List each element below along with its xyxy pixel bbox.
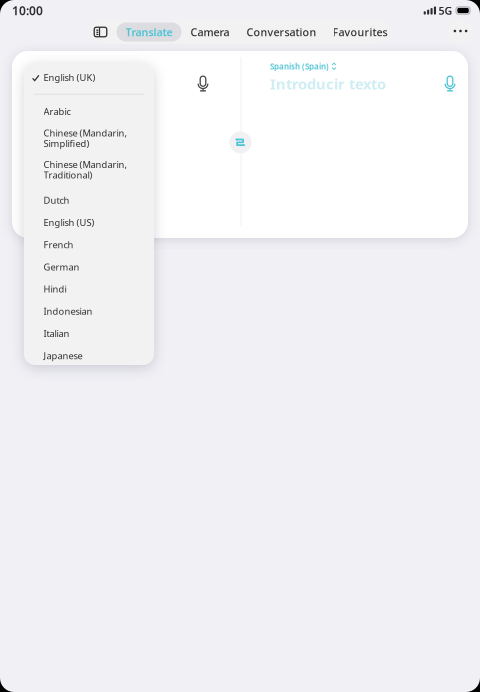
button[interactable]: Italian [24, 323, 154, 345]
staticText: 5G [438, 3, 452, 18]
button[interactable]: Camera [181, 20, 238, 44]
staticText: 10:00 [12, 2, 43, 18]
button[interactable]: Indonesian [24, 301, 154, 323]
staticText: Favourites [332, 25, 387, 39]
staticText: Traditional) [43, 169, 92, 181]
button[interactable]: Conversation [238, 20, 324, 44]
button[interactable]: Chinese (Mandarin, [24, 122, 154, 156]
staticText: English (UK) [43, 71, 95, 84]
button[interactable]: Speak source language [190, 71, 216, 97]
staticText: Japanese [43, 349, 82, 362]
staticText: Camera [190, 25, 229, 39]
button[interactable]: German [24, 256, 154, 279]
button[interactable]: French [24, 234, 154, 256]
button[interactable]: Dutch [24, 190, 154, 212]
staticText: Dutch [43, 194, 69, 206]
staticText: Conversation [246, 25, 316, 39]
staticText: Arabic [43, 105, 70, 118]
staticText: English (US) [43, 216, 94, 229]
button[interactable]: Arabic [24, 101, 154, 123]
staticText: Indonesian [43, 305, 92, 317]
staticText: French [43, 238, 73, 251]
button[interactable]: Japanese [24, 345, 154, 367]
button[interactable]: Translate [116, 22, 181, 41]
staticText: Translate [125, 25, 172, 39]
button[interactable]: Hindi [24, 279, 154, 301]
staticText: Chinese (Mandarin, [43, 158, 127, 171]
button[interactable]: English (UK) [24, 67, 154, 89]
staticText: Italian [43, 327, 69, 340]
staticText: Introducir texto [270, 74, 386, 94]
button[interactable]: English (US) [24, 212, 154, 234]
staticText: Chinese (Mandarin, [43, 127, 127, 139]
staticText: German [43, 261, 79, 273]
button[interactable]: More options [448, 18, 473, 43]
button[interactable]: Spanish (Spain) [270, 61, 336, 72]
button[interactable]: Show sidebar [84, 20, 116, 44]
button[interactable]: Favourites [324, 20, 395, 44]
button[interactable]: Speak Spanish [437, 71, 463, 97]
button[interactable]: Swap languages [229, 131, 251, 153]
staticText: Hindi [43, 283, 66, 295]
staticText: Spanish (Spain) [270, 61, 329, 72]
staticText: Simplified) [43, 137, 89, 150]
button[interactable]: Chinese (Mandarin, [24, 154, 154, 187]
